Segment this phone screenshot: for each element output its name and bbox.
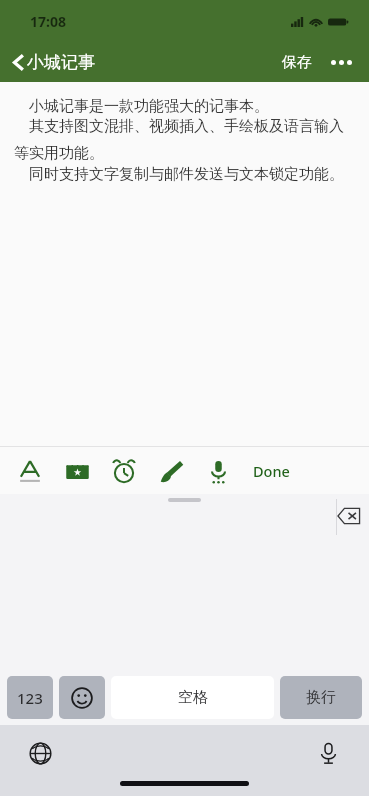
staticText: 空格	[178, 688, 208, 707]
button[interactable]: Change keyboard	[25, 738, 56, 769]
button[interactable]: Backspace	[332, 502, 366, 530]
button[interactable]: Dictation	[313, 738, 344, 769]
button[interactable]: Insert video	[62, 456, 92, 486]
button[interactable]: Reminder	[109, 456, 139, 486]
staticText: 其支持图文混排、视频插入、手绘板及语言输入等实用功能。	[14, 115, 351, 163]
button[interactable]: 小城记事	[0, 47, 105, 78]
staticText: 小城记事是一款功能强大的记事本。	[14, 95, 269, 115]
button[interactable]: 123	[7, 676, 53, 719]
staticText: Done	[253, 461, 290, 481]
staticText: 保存	[282, 53, 312, 72]
staticText: 123	[17, 688, 43, 708]
button[interactable]: Space	[111, 676, 274, 719]
button[interactable]: 保存	[276, 47, 318, 78]
staticText: 同时支持文字复制与邮件发送与文本锁定功能。	[14, 163, 344, 183]
button[interactable]: Return	[280, 676, 362, 719]
button[interactable]: More options	[325, 51, 358, 74]
button[interactable]: Draw	[156, 456, 186, 486]
staticText: 17:08	[30, 12, 66, 31]
button[interactable]: Text style	[15, 456, 45, 486]
button[interactable]: 小城记事是一款功能强大的记事本。	[0, 82, 369, 446]
button[interactable]: Emoji	[59, 676, 105, 719]
button[interactable]: Voice input	[203, 456, 233, 486]
staticText: 换行	[306, 688, 336, 707]
staticText: 小城记事	[27, 52, 95, 73]
button[interactable]: Done	[248, 455, 295, 487]
